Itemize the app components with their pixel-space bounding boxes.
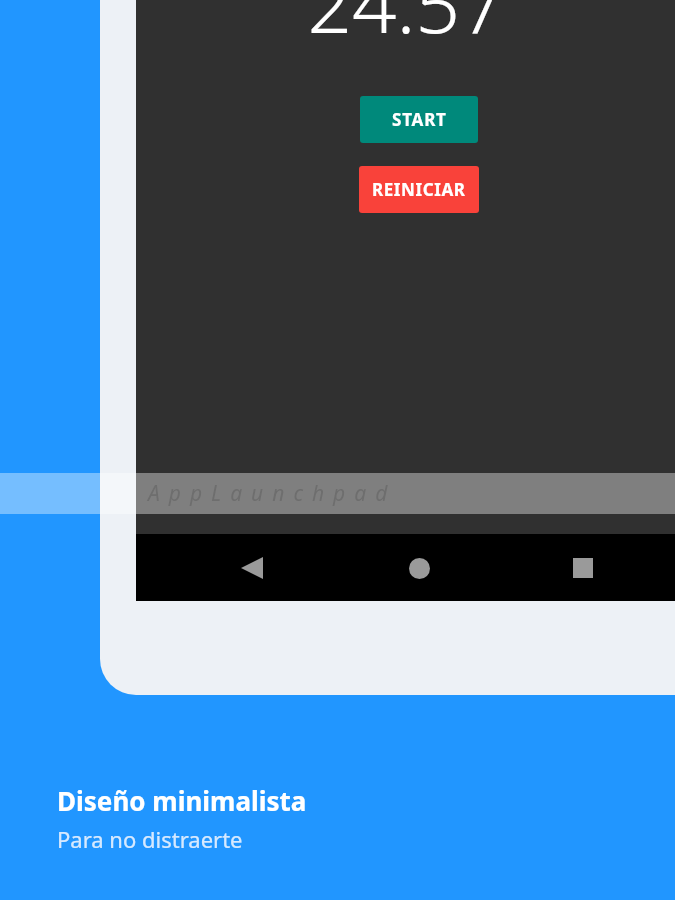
button[interactable]: Recent apps — [562, 547, 604, 589]
staticText: REINICIAR — [372, 178, 466, 201]
staticText: Diseño minimalista — [57, 783, 307, 818]
staticText: Para no distraerte — [57, 824, 243, 854]
button[interactable]: Home — [398, 547, 440, 589]
button[interactable]: REINICIAR — [359, 166, 479, 213]
staticText: START — [392, 108, 447, 131]
staticText: AppLaunchpad — [148, 479, 397, 508]
staticText: 24:57 — [307, 0, 505, 56]
button[interactable]: START — [360, 96, 478, 143]
button[interactable]: Back — [231, 547, 273, 589]
